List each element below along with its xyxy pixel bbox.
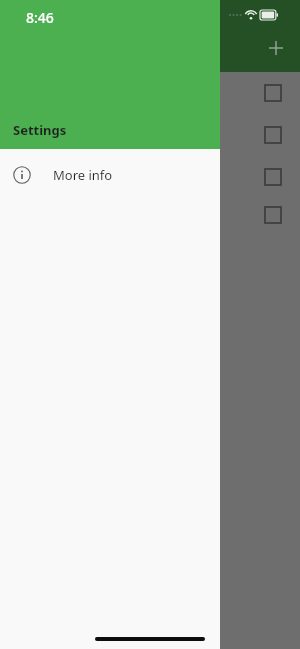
staticText: Settings <box>13 121 67 139</box>
button[interactable]: More info <box>0 149 300 201</box>
button[interactable]: Add <box>260 32 292 64</box>
staticText: 8:46 <box>26 8 54 27</box>
staticText: More info <box>53 166 113 184</box>
